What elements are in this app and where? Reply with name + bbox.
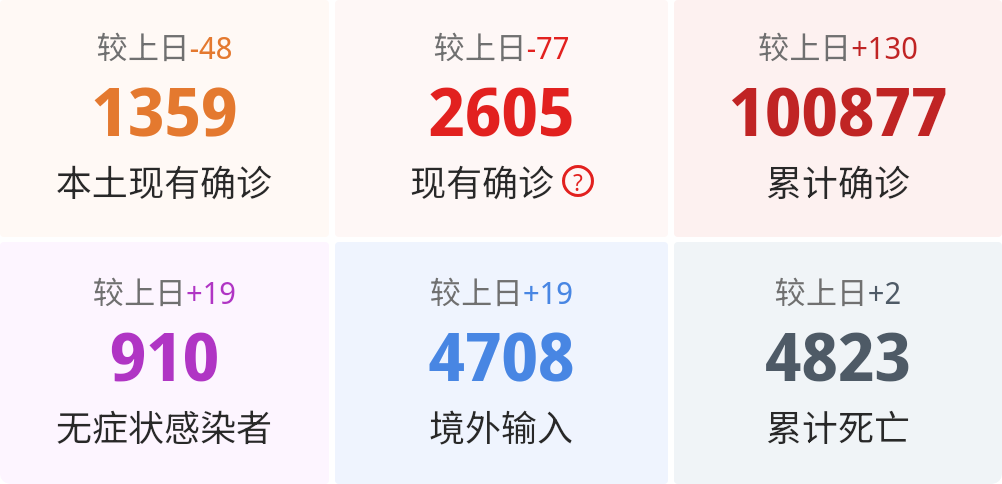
staticText: 较上日-48 (0, 23, 329, 68)
staticText: 100877 (674, 64, 1002, 155)
button[interactable]: 较上日+19 (0, 242, 329, 484)
staticText: 较上日+19 (335, 268, 668, 313)
staticText: 4823 (674, 309, 1002, 400)
staticText: 较上日+2 (674, 268, 1002, 313)
staticText: 4708 (335, 309, 668, 400)
staticText: 910 (0, 309, 329, 400)
staticText: 无症状感染者 (56, 399, 273, 451)
staticText: 较上日-77 (335, 23, 668, 68)
button[interactable]: 较上日+19 (335, 242, 668, 484)
staticText: 境外输入 (429, 399, 574, 451)
staticText: 较上日+19 (0, 268, 329, 313)
button[interactable]: 较上日+2 (674, 242, 1002, 484)
staticText: 累计确诊 (766, 154, 911, 206)
staticText: 本土现有确诊 (56, 154, 273, 206)
staticText: 现有确诊 (410, 154, 555, 206)
staticText: 累计死亡 (766, 399, 911, 451)
button[interactable]: 较上日-77 (335, 0, 668, 237)
button[interactable]: 较上日-48 (0, 0, 329, 237)
staticText: 较上日+130 (674, 23, 1002, 68)
staticText: 1359 (0, 64, 329, 155)
staticText: 2605 (335, 64, 668, 155)
staticText: ? (573, 165, 583, 197)
button[interactable]: 较上日+130 (674, 0, 1002, 237)
button[interactable]: More info (562, 165, 594, 197)
